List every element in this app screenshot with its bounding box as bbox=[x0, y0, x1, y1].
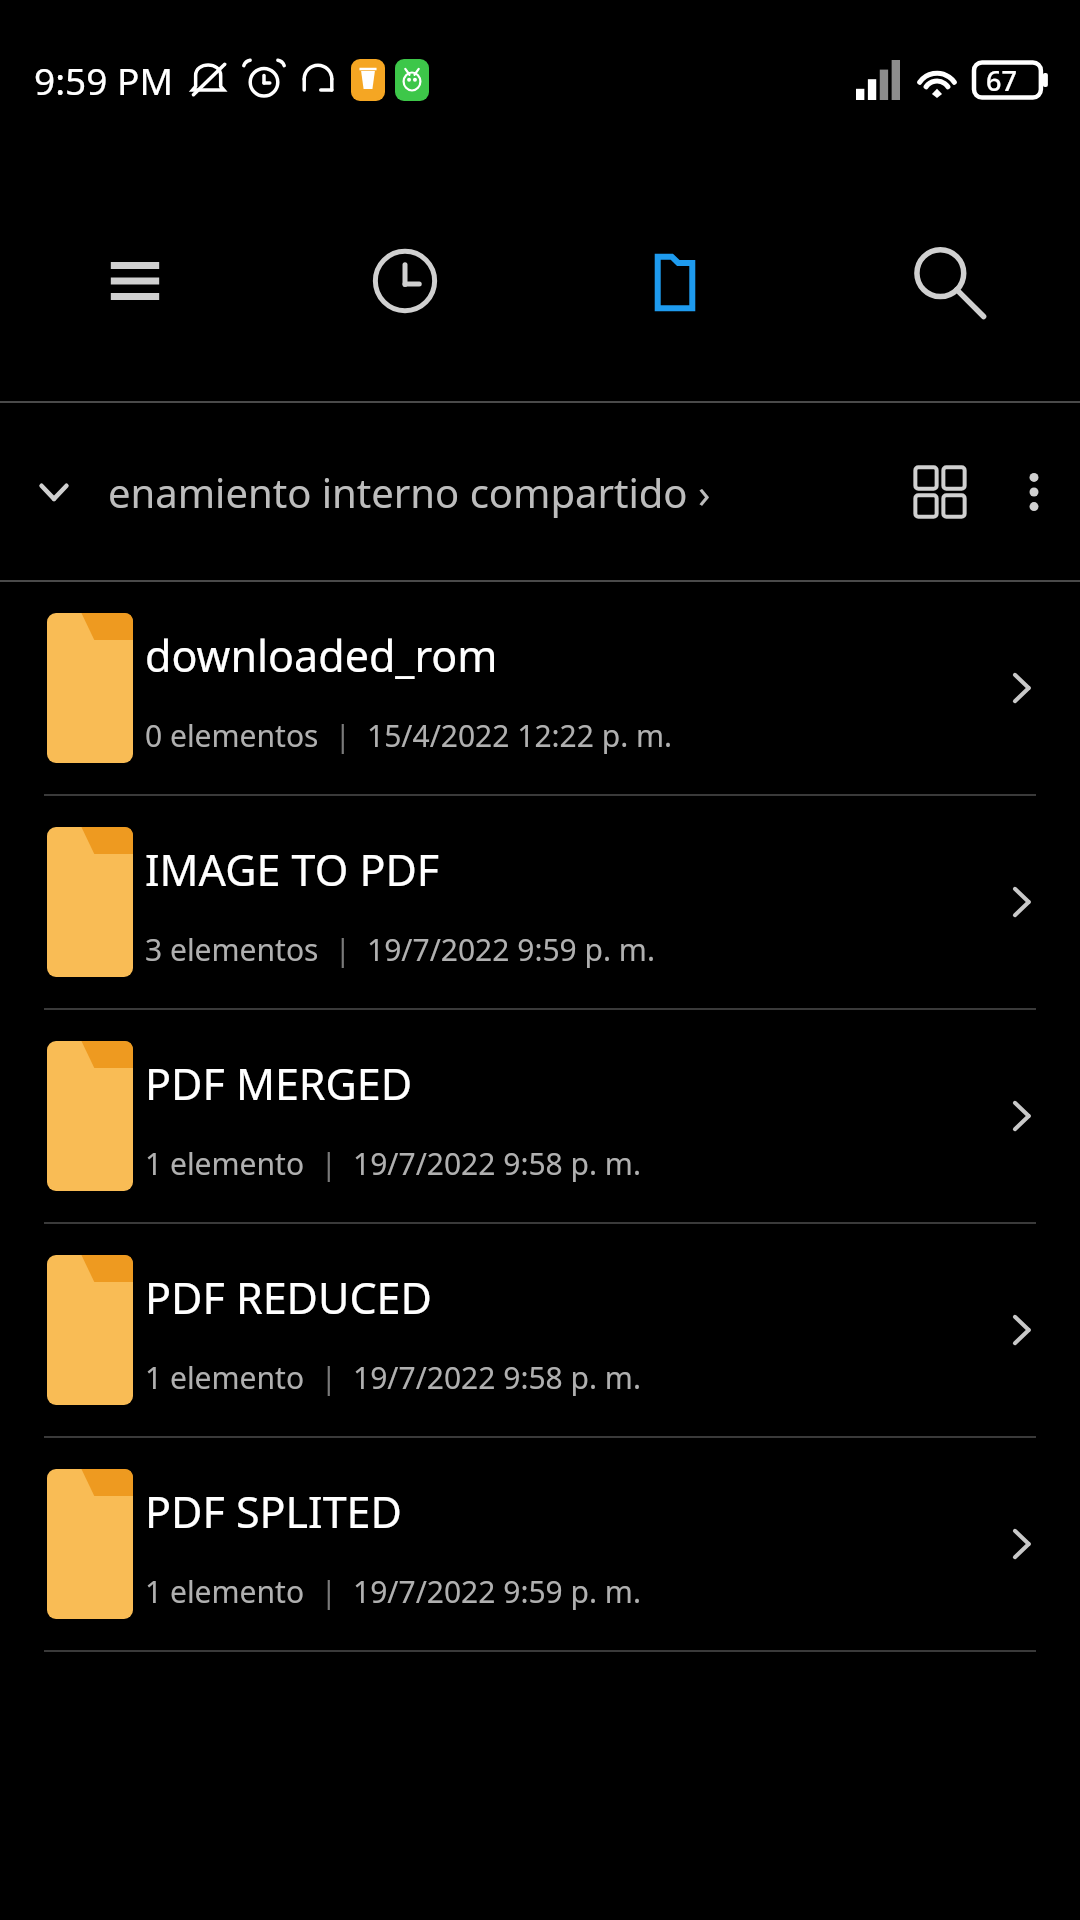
staticText: | bbox=[305, 1571, 353, 1612]
staticText: 1 elemento bbox=[145, 1571, 305, 1612]
button[interactable]: downloaded_rom bbox=[0, 582, 1080, 794]
staticText: | bbox=[319, 715, 367, 756]
button[interactable]: PDF REDUCED bbox=[0, 1224, 1080, 1436]
staticText: 1 elemento bbox=[145, 1143, 305, 1184]
staticText: 1 elemento bbox=[145, 1357, 305, 1398]
button[interactable]: PDF MERGED bbox=[0, 1010, 1080, 1222]
other: Open folder bbox=[970, 1438, 1080, 1650]
staticText: 19/7/2022 9:58 p. m. bbox=[353, 1357, 641, 1398]
button[interactable]: IMAGE TO PDF bbox=[0, 796, 1080, 1008]
button[interactable]: Menu bbox=[0, 160, 270, 401]
staticText: IMAGE TO PDF bbox=[145, 840, 440, 899]
staticText: 19/7/2022 9:58 p. m. bbox=[353, 1143, 641, 1184]
button[interactable]: PDF SPLITED bbox=[0, 1438, 1080, 1650]
other: Open folder bbox=[970, 582, 1080, 794]
staticText: 9:59 PM bbox=[34, 55, 173, 105]
staticText: 0 elementos bbox=[145, 715, 319, 756]
staticText: 67 bbox=[986, 62, 1017, 99]
other: Open folder bbox=[970, 796, 1080, 1008]
staticText: | bbox=[305, 1143, 353, 1184]
button[interactable]: Grid view bbox=[892, 403, 988, 580]
staticText: PDF SPLITED bbox=[145, 1482, 402, 1541]
staticText: 19/7/2022 9:59 p. m. bbox=[353, 1571, 641, 1612]
staticText: enamiento interno compartido › Download … bbox=[108, 465, 892, 519]
staticText: PDF REDUCED bbox=[145, 1268, 432, 1327]
staticText: 15/4/2022 12:22 p. m. bbox=[367, 715, 673, 756]
staticText: downloaded_rom bbox=[145, 626, 498, 685]
staticText: PDF MERGED bbox=[145, 1054, 413, 1113]
other: Open folder bbox=[970, 1010, 1080, 1222]
button[interactable]: More options bbox=[988, 403, 1080, 580]
button[interactable]: Search bbox=[810, 160, 1080, 401]
other: Open folder bbox=[970, 1224, 1080, 1436]
button[interactable]: Files bbox=[540, 160, 810, 401]
button[interactable]: enamiento interno compartido › Download … bbox=[108, 403, 892, 580]
staticText: | bbox=[305, 1357, 353, 1398]
staticText: 3 elementos bbox=[145, 929, 319, 970]
button[interactable]: Expand path bbox=[0, 403, 108, 580]
button[interactable]: Recent bbox=[270, 160, 540, 401]
staticText: 19/7/2022 9:59 p. m. bbox=[367, 929, 655, 970]
staticText: | bbox=[319, 929, 367, 970]
